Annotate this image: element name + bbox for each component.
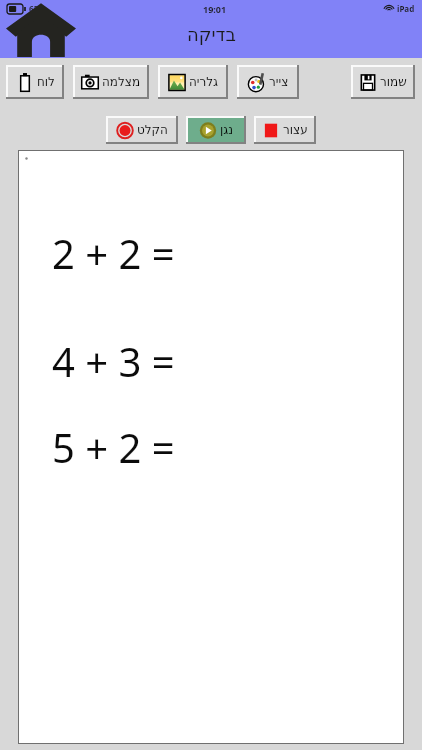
button[interactable]: Play (186, 116, 246, 144)
staticText: 2 + 2 = (52, 226, 175, 280)
staticText: 19:01 (203, 3, 227, 15)
button[interactable]: Stop (254, 116, 316, 144)
staticText: iPad (397, 3, 415, 14)
staticText: מצלמה (102, 75, 141, 89)
button[interactable]: Record (106, 116, 178, 144)
staticText: שמור (380, 75, 407, 89)
staticText: צייר (269, 75, 289, 89)
staticText: גלריה (189, 75, 219, 89)
button[interactable]: Home (6, 1, 76, 56)
staticText: הקלט (137, 123, 168, 137)
staticText: 62% (29, 3, 46, 14)
button[interactable]: Camera (73, 65, 149, 99)
staticText: לוח (37, 75, 55, 89)
button[interactable]: 2 + 2 = (18, 150, 404, 744)
staticText: בדיקה (187, 24, 236, 45)
staticText: עצור (283, 123, 308, 137)
staticText: 4 + 3 = (52, 334, 175, 388)
staticText: נגן (220, 123, 234, 137)
button[interactable]: Draw (237, 65, 299, 99)
button[interactable]: Save (351, 65, 415, 99)
staticText: 5 + 2 = (52, 420, 175, 474)
button[interactable]: Board (6, 65, 64, 99)
button[interactable]: Gallery (158, 65, 228, 99)
